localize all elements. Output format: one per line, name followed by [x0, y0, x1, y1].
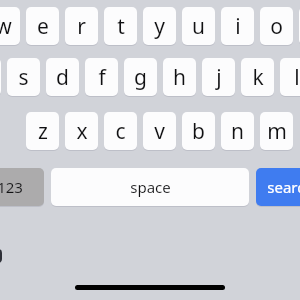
staticText: v [154, 117, 165, 146]
button[interactable]: t [104, 7, 137, 45]
button[interactable]: p [299, 7, 300, 45]
button[interactable]: f [85, 58, 118, 96]
staticText: space [130, 177, 171, 197]
button[interactable]: l [280, 58, 300, 96]
button[interactable]: s [7, 58, 40, 96]
button[interactable]: r [65, 7, 98, 45]
button[interactable]: d [46, 58, 79, 96]
button[interactable]: g [124, 58, 157, 96]
staticText: d [56, 63, 69, 92]
button[interactable]: Keyboard options [0, 249, 2, 263]
button[interactable]: e [26, 7, 59, 45]
staticText: x [76, 117, 88, 146]
staticText: y [154, 12, 165, 41]
button[interactable]: h [163, 58, 196, 96]
button[interactable]: v [143, 112, 176, 150]
staticText: r [77, 12, 86, 41]
staticText: n [231, 117, 244, 146]
staticText: w [0, 12, 12, 41]
staticText: g [134, 63, 147, 92]
button[interactable]: search [256, 168, 300, 206]
button[interactable]: i [221, 7, 254, 45]
staticText: i [235, 12, 241, 41]
staticText: c [115, 117, 126, 146]
button[interactable]: space [51, 168, 249, 206]
button[interactable]: Numbers and symbols [0, 168, 44, 206]
button[interactable]: o [260, 7, 293, 45]
staticText: l [294, 63, 300, 92]
button[interactable]: k [241, 58, 274, 96]
staticText: z [38, 117, 48, 146]
staticText: k [252, 63, 264, 92]
button[interactable]: u [182, 7, 215, 45]
staticText: b [192, 117, 205, 146]
button[interactable]: z [26, 112, 59, 150]
button[interactable]: n [221, 112, 254, 150]
staticText: m [267, 117, 287, 146]
button[interactable]: b [182, 112, 215, 150]
button[interactable]: y [143, 7, 176, 45]
staticText: o [270, 12, 283, 41]
staticText: s [18, 63, 29, 92]
button[interactable]: w [0, 7, 20, 45]
button[interactable]: j [202, 58, 235, 96]
staticText: e [37, 12, 49, 41]
staticText: h [173, 63, 186, 92]
staticText: t [117, 12, 125, 41]
staticText: search [267, 177, 300, 197]
button[interactable]: m [260, 112, 293, 150]
staticText: j [216, 63, 222, 92]
button[interactable]: a [0, 58, 1, 96]
staticText: 123 [0, 177, 23, 197]
staticText: u [192, 12, 205, 41]
button[interactable]: c [104, 112, 137, 150]
staticText: f [98, 63, 106, 92]
button[interactable]: x [65, 112, 98, 150]
